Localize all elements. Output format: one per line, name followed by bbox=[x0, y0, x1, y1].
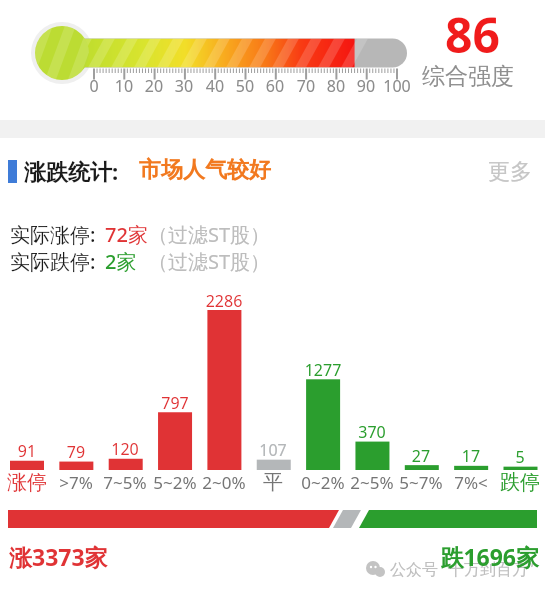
staticText: 120 bbox=[85, 438, 165, 592]
staticText: 370 bbox=[332, 421, 412, 592]
staticText: 跌1696家 bbox=[419, 541, 539, 592]
staticText: 实际涨停: bbox=[10, 221, 96, 248]
staticText: 27 bbox=[381, 445, 461, 592]
staticText: 79 bbox=[36, 441, 116, 592]
staticText: 2286 bbox=[184, 290, 264, 592]
staticText: 涨3373家 bbox=[9, 541, 108, 572]
button[interactable] bbox=[0, 0, 545, 592]
button[interactable]: 86 bbox=[430, 2, 515, 592]
staticText: 86 bbox=[430, 2, 515, 592]
staticText: 5~7% bbox=[381, 471, 461, 592]
staticText: 综合强度 bbox=[422, 62, 514, 91]
staticText: 公众号 “十万到百万” bbox=[390, 558, 534, 580]
staticText: 0 bbox=[54, 75, 134, 592]
staticText: 跌停 bbox=[480, 470, 545, 592]
staticText: （过滤ST股） bbox=[148, 248, 271, 275]
staticText: 70 bbox=[266, 75, 346, 592]
staticText: 100 bbox=[357, 75, 437, 592]
staticText: 80 bbox=[296, 75, 376, 592]
staticText: 20 bbox=[114, 75, 194, 592]
staticText: 5 bbox=[480, 446, 545, 592]
staticText: 2~0% bbox=[184, 471, 264, 592]
staticText: 2家 bbox=[105, 248, 137, 275]
staticText: >7% bbox=[36, 471, 116, 592]
staticText: 40 bbox=[175, 75, 255, 592]
staticText: 50 bbox=[205, 75, 285, 592]
staticText: 0~2% bbox=[283, 471, 363, 592]
staticText: 7%< bbox=[431, 471, 511, 592]
staticText: 10 bbox=[84, 75, 164, 592]
staticText: 涨停 bbox=[0, 470, 67, 592]
staticText: 更多 bbox=[488, 158, 532, 186]
staticText: 91 bbox=[0, 440, 67, 592]
staticText: 实际跌停: bbox=[10, 248, 96, 275]
staticText: 7~5% bbox=[85, 471, 165, 592]
staticText: （过滤ST股） bbox=[148, 221, 271, 248]
button[interactable]: 更多 bbox=[488, 158, 532, 186]
button[interactable] bbox=[0, 0, 545, 592]
staticText: 72家 bbox=[105, 221, 148, 248]
staticText: 市场人气较好 bbox=[139, 156, 271, 184]
staticText: 17 bbox=[431, 445, 511, 592]
staticText: 平 bbox=[233, 470, 313, 592]
staticText: 107 bbox=[233, 439, 313, 592]
staticText: 60 bbox=[235, 75, 315, 592]
staticText: 5~2% bbox=[135, 471, 215, 592]
staticText: 1277 bbox=[283, 359, 363, 592]
staticText: 797 bbox=[135, 392, 215, 592]
staticText: 2~5% bbox=[332, 471, 412, 592]
staticText: 90 bbox=[326, 75, 406, 592]
staticText: 30 bbox=[144, 75, 224, 592]
staticText: 涨跌统计: bbox=[24, 156, 119, 186]
